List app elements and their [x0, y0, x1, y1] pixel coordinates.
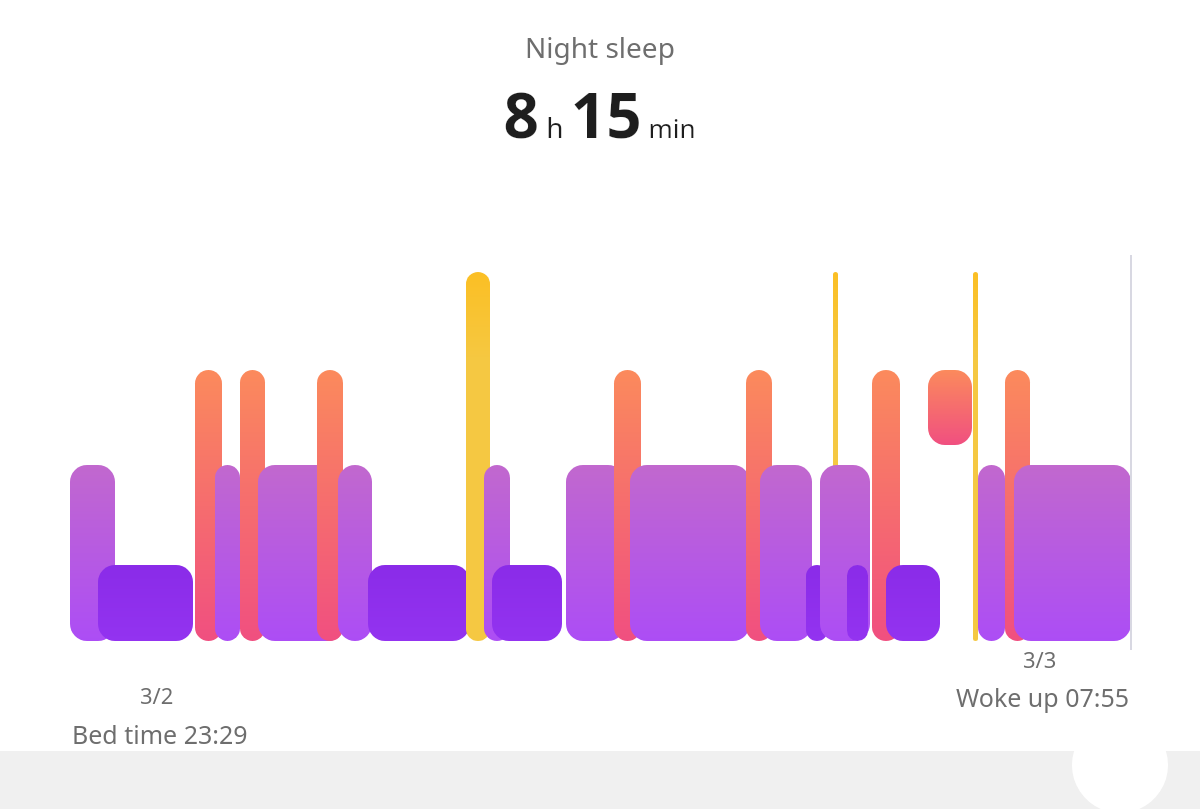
button[interactable]: Add sleep record	[1126, 735, 1200, 809]
